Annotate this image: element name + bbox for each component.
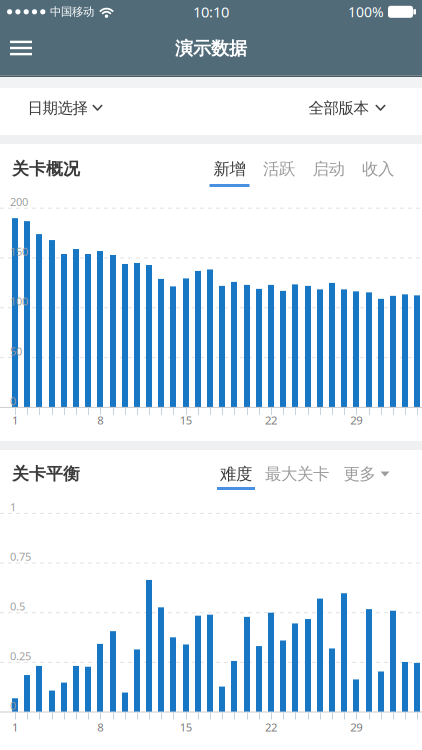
staticText: 22 [265,719,277,735]
staticText: 0.5 [10,599,25,614]
staticText: 难度 [220,464,252,484]
staticText: 更多 [343,464,375,484]
staticText: 0 [10,393,16,408]
staticText: 50 [10,344,22,359]
button[interactable]: 更多 [343,464,389,484]
staticText: 0.75 [10,549,31,564]
staticText: 1 [12,412,18,428]
staticText: 8 [97,719,103,735]
staticText: 演示数据 [175,37,247,60]
staticText: 新增 [213,159,245,179]
button[interactable]: 活跃 [263,159,295,179]
staticText: 1 [12,719,18,735]
staticText: 收入 [362,159,394,179]
staticText: 关卡概况 [12,158,80,180]
staticText: 日期选择 [27,98,87,118]
staticText: 15 [180,412,192,428]
button[interactable]: 最大关卡 [265,464,329,484]
staticText: 关卡平衡 [12,463,80,485]
staticText: 启动 [312,159,344,179]
staticText: 150 [10,244,28,259]
staticText: 29 [350,412,362,428]
staticText: 0 [10,698,16,713]
staticText: 中国移动 [50,5,94,19]
button[interactable]: 收入 [362,159,394,179]
button[interactable]: 启动 [312,159,344,179]
button[interactable]: 新增 [213,159,245,179]
staticText: 10:10 [193,2,229,22]
staticText: 8 [97,412,103,428]
button[interactable]: 难度 [220,464,252,484]
staticText: 22 [265,412,277,428]
staticText: 0.25 [10,648,31,663]
staticText: 100 [10,294,28,309]
staticText: 全部版本 [308,98,368,118]
button[interactable]: 全部版本 [308,90,385,126]
staticText: 29 [350,719,362,735]
staticText: 15 [180,719,192,735]
staticText: 100% [348,2,384,21]
button[interactable]: Menu [4,35,38,61]
staticText: 200 [10,194,28,209]
button[interactable]: 日期选择 [27,90,102,126]
staticText: 1 [10,499,16,514]
staticText: 最大关卡 [265,464,329,484]
staticText: 活跃 [263,159,295,179]
